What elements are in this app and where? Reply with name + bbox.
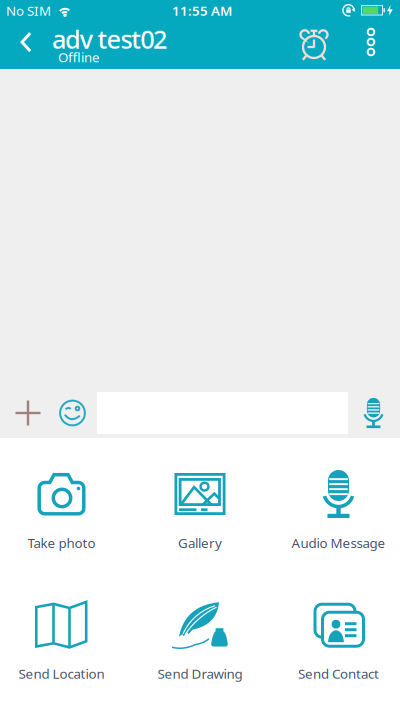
button[interactable]: Audio Message — [277, 467, 400, 552]
staticText: adv test02 — [52, 22, 167, 56]
staticText: Send Drawing — [157, 665, 242, 682]
staticText: Gallery — [178, 534, 222, 552]
staticText: Take photo — [27, 534, 95, 552]
button[interactable]: Record voice message — [363, 397, 384, 428]
button[interactable]: Send Drawing — [123, 598, 277, 682]
button[interactable]: Send Location — [0, 598, 123, 682]
button[interactable]: Attach — [15, 400, 41, 426]
button[interactable]: More options — [361, 25, 381, 65]
staticText: 11:55 AM — [172, 2, 232, 19]
button[interactable]: Send Contact — [277, 598, 400, 682]
button[interactable]: Emoji — [59, 399, 86, 426]
staticText: Offline — [58, 48, 100, 66]
button[interactable]: Take photo — [0, 467, 123, 552]
staticText: Send Contact — [298, 665, 379, 682]
staticText: No SIM — [6, 2, 51, 19]
staticText: Audio Message — [291, 534, 385, 552]
button[interactable]: Set reminder — [295, 26, 333, 64]
button[interactable]: Gallery — [123, 467, 277, 552]
staticText: Send Location — [18, 665, 104, 682]
button[interactable]: Back — [14, 28, 38, 62]
